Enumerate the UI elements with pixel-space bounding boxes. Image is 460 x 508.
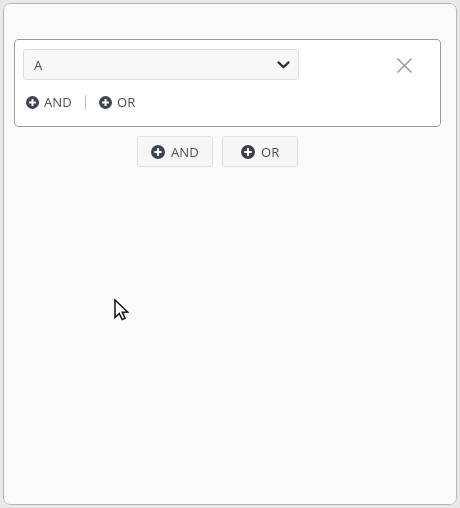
staticText: OR	[117, 93, 136, 111]
button[interactable]: OR	[98, 91, 137, 113]
staticText: AND	[171, 143, 199, 161]
staticText: AND	[44, 93, 72, 111]
button[interactable]: Remove condition	[391, 52, 417, 78]
staticText: OR	[261, 143, 280, 161]
button[interactable]: A	[23, 49, 299, 80]
button[interactable]: AND	[25, 91, 73, 113]
staticText: A	[34, 56, 43, 74]
button[interactable]: AND	[137, 136, 213, 167]
button[interactable]: OR	[222, 136, 298, 167]
